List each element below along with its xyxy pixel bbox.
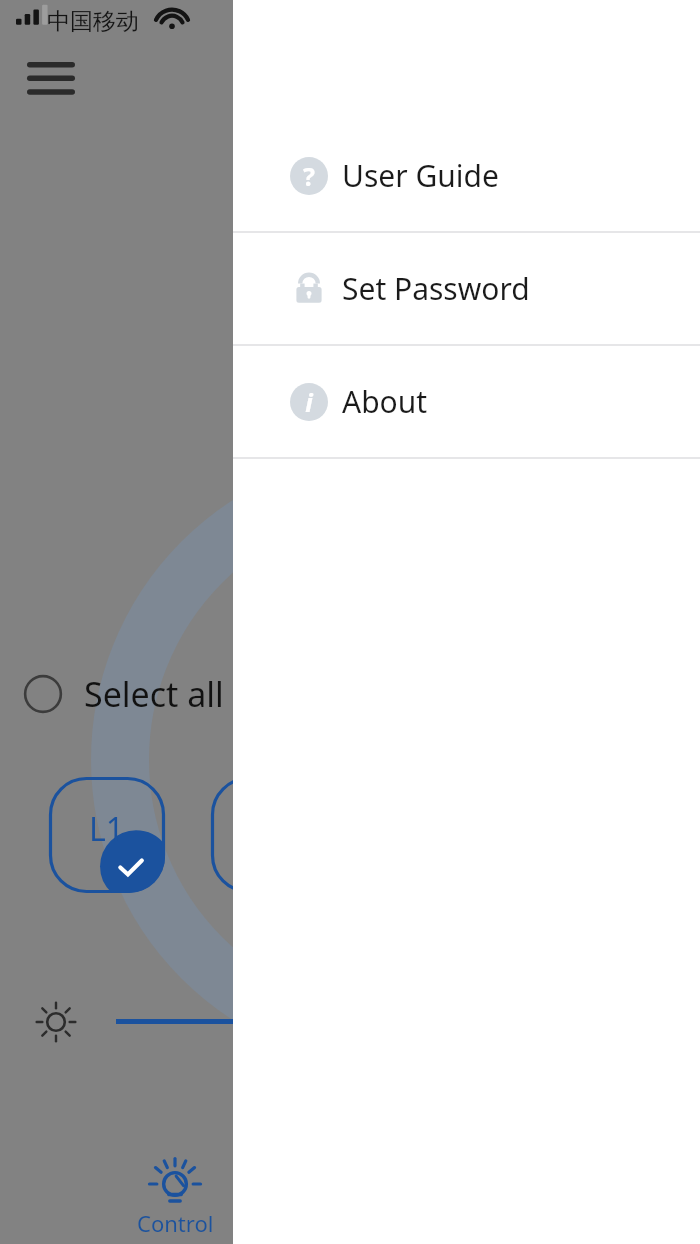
staticText: Control [137, 1208, 214, 1238]
staticText: ? [303, 159, 315, 193]
button[interactable]: ? [233, 120, 700, 231]
button[interactable]: Menu [18, 54, 84, 102]
button[interactable]: Control [130, 1158, 220, 1244]
staticText: User Guide [342, 155, 499, 196]
button[interactable]: Set Password [233, 233, 700, 344]
button[interactable]: i [233, 346, 700, 457]
staticText: About [342, 381, 428, 422]
staticText: L1 [89, 807, 125, 851]
button[interactable]: Select all [0, 668, 224, 720]
staticText: i [305, 385, 313, 419]
staticText: Select all [84, 671, 224, 717]
button[interactable]: L1 [211, 777, 327, 893]
staticText: Set Password [342, 268, 530, 309]
staticText: 中国移动 [47, 7, 139, 36]
button[interactable]: L1 [49, 777, 165, 893]
